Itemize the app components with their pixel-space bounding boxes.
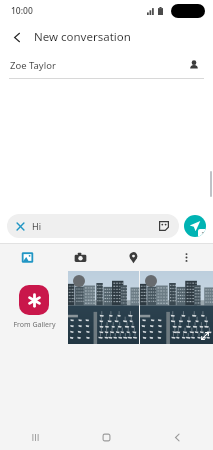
staticText: New conversation xyxy=(34,29,131,45)
button[interactable]: Camera xyxy=(54,244,107,271)
button[interactable]: Home xyxy=(71,424,142,450)
button[interactable]: Clear text xyxy=(7,214,179,238)
button[interactable]: Clear text xyxy=(13,219,27,233)
staticText: 10:00 xyxy=(11,5,33,17)
button[interactable]: Send message xyxy=(184,215,206,237)
button[interactable]: More options xyxy=(160,244,213,271)
button[interactable]: Photo from gallery xyxy=(68,271,139,344)
button[interactable]: Add recipient from contacts xyxy=(185,56,203,74)
button[interactable]: Location xyxy=(107,244,160,271)
staticText: From Gallery xyxy=(13,320,56,330)
button[interactable]: Gallery xyxy=(0,244,54,271)
button[interactable]: Back xyxy=(142,424,213,450)
button[interactable]: Select photo xyxy=(145,275,157,287)
button[interactable]: Select photo xyxy=(73,275,85,287)
staticText: Zoe Taylor xyxy=(10,59,185,72)
button[interactable]: Photo from gallery xyxy=(140,271,213,344)
staticText: Hi xyxy=(32,220,156,232)
button[interactable]: Stickers xyxy=(156,218,172,234)
staticText: 1 xyxy=(201,230,205,237)
button[interactable]: From Gallery xyxy=(0,271,68,344)
button[interactable]: Back xyxy=(6,26,28,48)
button[interactable]: Expand photo xyxy=(199,330,210,341)
button[interactable]: Recent apps xyxy=(0,424,71,450)
